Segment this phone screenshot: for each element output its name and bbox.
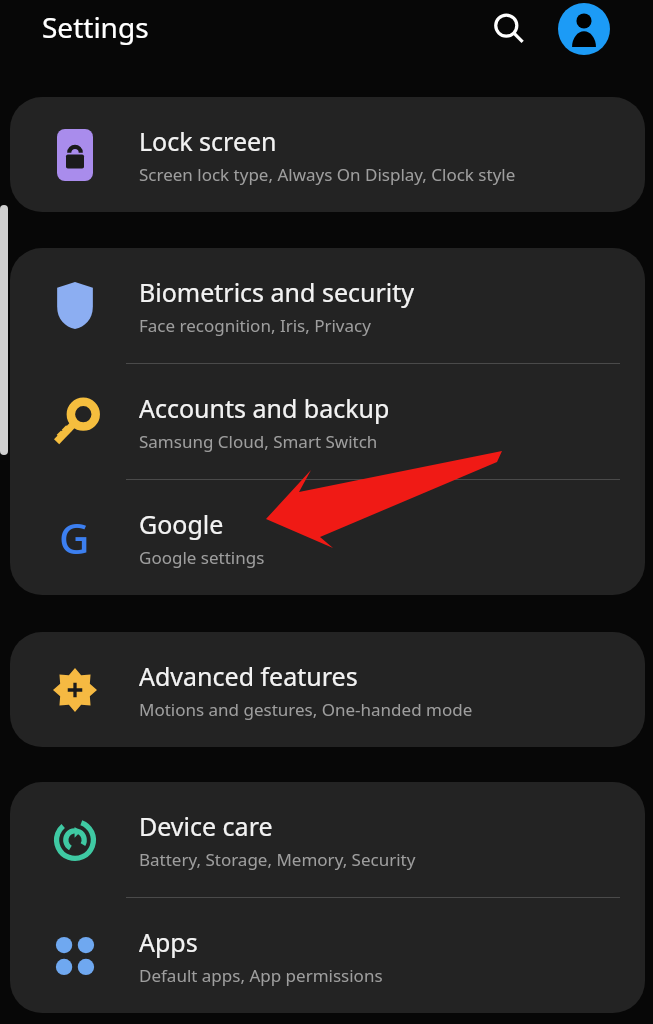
button[interactable]: Account: [558, 3, 610, 55]
staticText: Google: [139, 507, 224, 541]
staticText: Apps: [139, 925, 198, 959]
button[interactable]: Advanced features: [10, 632, 645, 747]
button[interactable]: Device care: [10, 782, 645, 897]
staticText: Battery, Storage, Memory, Security: [139, 848, 416, 871]
staticText: Biometrics and security: [139, 275, 415, 309]
button[interactable]: Apps: [10, 898, 645, 1013]
staticText: Screen lock type, Always On Display, Clo…: [139, 163, 516, 186]
staticText: Settings: [42, 8, 149, 46]
staticText: Motions and gestures, One-handed mode: [139, 698, 473, 721]
staticText: Advanced features: [139, 659, 358, 693]
staticText: Face recognition, Iris, Privacy: [139, 314, 371, 337]
staticText: Accounts and backup: [139, 391, 390, 425]
staticText: Device care: [139, 809, 273, 843]
button[interactable]: Biometrics and security: [10, 248, 645, 363]
staticText: Lock screen: [139, 124, 277, 158]
button[interactable]: Accounts and backup: [10, 364, 645, 479]
staticText: Google settings: [139, 546, 265, 569]
button[interactable]: Search: [483, 3, 535, 55]
staticText: Samsung Cloud, Smart Switch: [139, 430, 378, 453]
staticText: G: [59, 509, 90, 566]
staticText: Default apps, App permissions: [139, 964, 383, 987]
button[interactable]: Lock screen: [10, 97, 645, 212]
button[interactable]: G: [10, 480, 645, 595]
